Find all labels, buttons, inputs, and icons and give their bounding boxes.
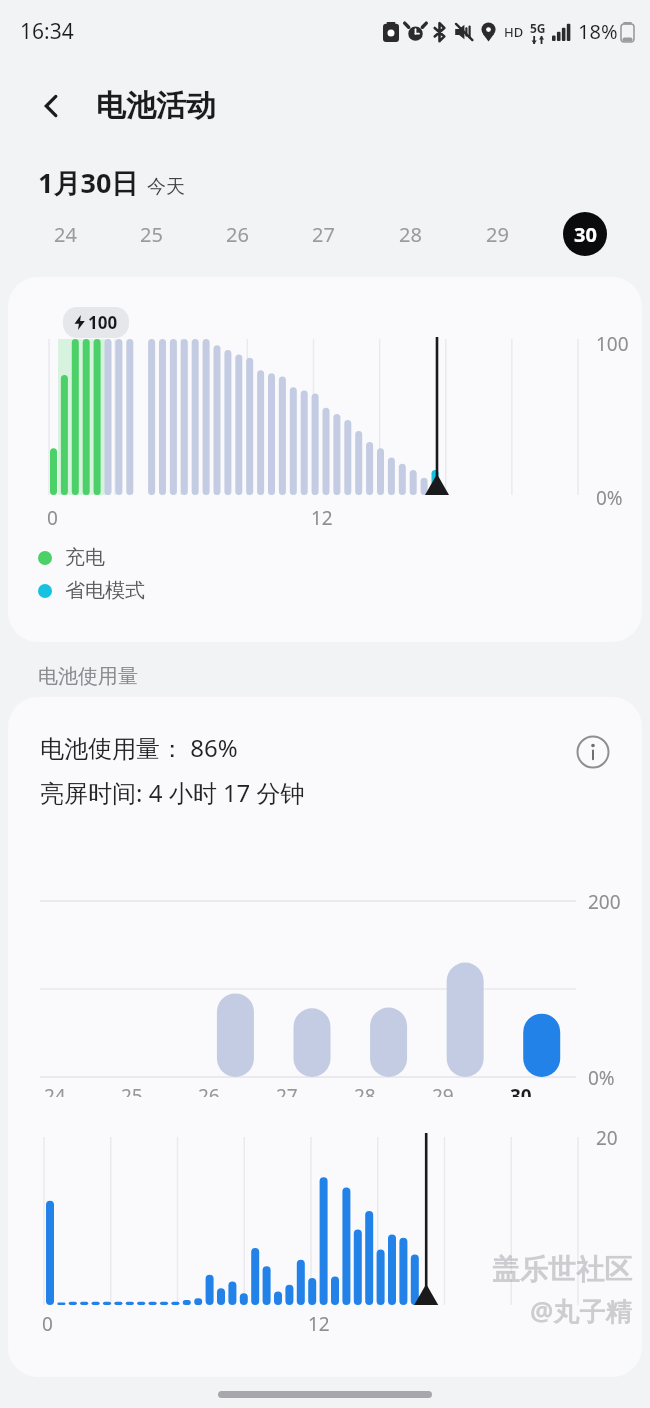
button[interactable]: 25 [108, 205, 194, 263]
staticText: 5G [530, 20, 546, 36]
staticText: 电池活动 [96, 87, 216, 125]
staticText: 100 [596, 331, 629, 357]
staticText: 29 [432, 1083, 454, 1097]
staticText: 30 [510, 1083, 532, 1097]
staticText: 0 [42, 1311, 53, 1337]
staticText: 0% [588, 1065, 615, 1091]
button[interactable]: 26 [194, 205, 280, 263]
staticText: 18% [578, 18, 618, 45]
staticText: 24 [54, 221, 77, 248]
staticText: 16:34 [20, 17, 74, 46]
staticText: 12 [308, 1311, 330, 1337]
staticText: 100 [88, 311, 118, 334]
staticText: 0% [596, 485, 623, 511]
staticText: 亮屏时间: 4 小时 17 分钟 [40, 776, 305, 809]
staticText: 200 [588, 889, 621, 915]
button[interactable]: Back [30, 84, 74, 128]
staticText: 25 [140, 221, 163, 248]
staticText: 30 [574, 221, 597, 248]
staticText: 充电 [65, 545, 105, 570]
staticText: 29 [486, 221, 509, 248]
button[interactable]: 100 [8, 277, 642, 642]
staticText: @丸子精 [530, 1293, 632, 1329]
staticText: 20 [596, 1125, 618, 1151]
staticText: 28 [399, 221, 422, 248]
button[interactable]: 28 [367, 205, 454, 263]
staticText: 25 [121, 1083, 143, 1097]
staticText: 27 [276, 1083, 298, 1097]
staticText: 电池使用量 [38, 664, 138, 689]
staticText: 今天 [147, 175, 185, 199]
staticText: 26 [198, 1083, 220, 1097]
button[interactable]: 24 [22, 205, 108, 263]
staticText: 盖乐世社区 [492, 1252, 632, 1287]
button[interactable]: 27 [280, 205, 367, 263]
staticText: 省电模式 [65, 578, 145, 603]
staticText: 26 [226, 221, 249, 248]
staticText: 电池使用量： 86% [40, 731, 238, 764]
staticText: 27 [312, 221, 335, 248]
staticText: 1月30日 [38, 164, 139, 201]
button[interactable]: 30 [541, 205, 628, 263]
staticText: 28 [354, 1083, 376, 1097]
button[interactable]: Information [574, 733, 612, 771]
staticText: 0 [47, 505, 58, 531]
staticText: HD [504, 23, 524, 41]
staticText: 12 [311, 505, 333, 531]
staticText: 24 [44, 1083, 66, 1097]
button[interactable]: 29 [454, 205, 541, 263]
